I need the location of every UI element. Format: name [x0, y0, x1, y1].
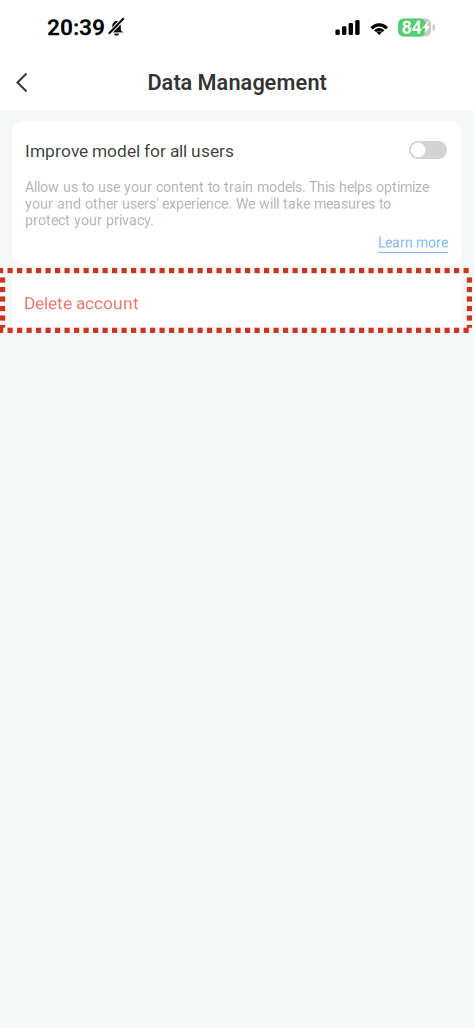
button[interactable]: Back — [2, 60, 42, 104]
staticText: 84 — [402, 17, 422, 38]
staticText: Allow us to use your content to train mo… — [25, 179, 429, 229]
staticText: Data Management — [147, 70, 326, 95]
staticText: 20:39 — [47, 14, 105, 41]
staticText: Learn more — [378, 235, 448, 251]
button[interactable]: Improve model for all users — [409, 141, 447, 159]
staticText: Improve model for all users — [25, 141, 234, 161]
button[interactable]: Delete account — [0, 268, 474, 333]
staticText: Delete account — [24, 293, 139, 314]
button[interactable]: Learn more — [12, 229, 462, 265]
